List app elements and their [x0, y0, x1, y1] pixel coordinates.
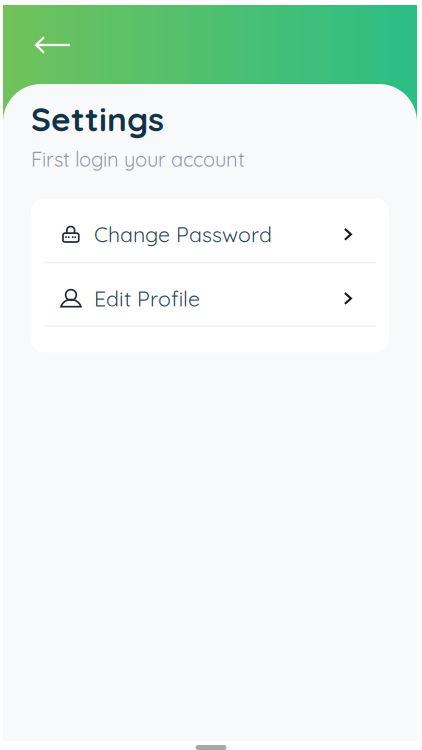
button[interactable]: Edit Profile: [31, 271, 389, 325]
staticText: Change Password: [94, 221, 272, 248]
button[interactable]: Back: [27, 23, 79, 67]
staticText: Settings: [31, 98, 164, 140]
staticText: First login your account: [31, 147, 245, 172]
staticText: Edit Profile: [94, 285, 200, 312]
button[interactable]: Change Password: [31, 207, 389, 262]
